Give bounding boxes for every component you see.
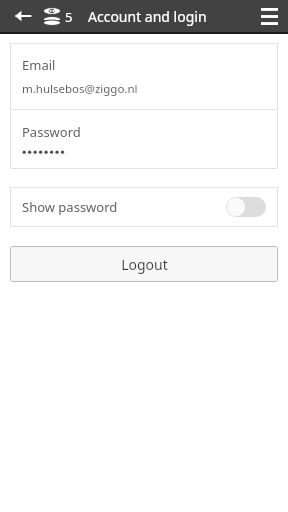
staticText: 5 bbox=[65, 8, 73, 26]
staticText: Password bbox=[22, 123, 81, 141]
button[interactable]: Password bbox=[10, 110, 278, 169]
button[interactable]: Back bbox=[8, 1, 38, 31]
other: Show password toggle, off bbox=[226, 197, 266, 217]
staticText: Show password bbox=[22, 198, 118, 216]
staticText: Email bbox=[22, 56, 56, 74]
staticText: m.hulsebos@ziggo.nl bbox=[22, 81, 138, 97]
button[interactable]: Credits: 5 bbox=[42, 7, 73, 26]
button[interactable]: Logout bbox=[10, 246, 278, 282]
button[interactable]: Email bbox=[10, 43, 278, 109]
staticText: Logout bbox=[121, 255, 168, 274]
button[interactable]: Menu bbox=[254, 1, 284, 31]
staticText: Account and login bbox=[88, 7, 207, 26]
button[interactable]: Show password bbox=[10, 187, 278, 227]
